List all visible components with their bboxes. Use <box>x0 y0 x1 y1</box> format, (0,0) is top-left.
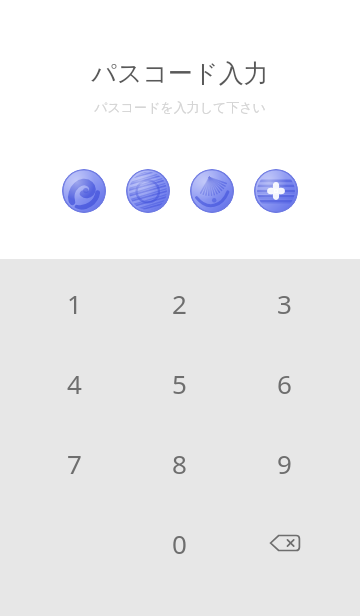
button[interactable]: Passcode digit 4 <box>254 169 298 213</box>
button[interactable]: Passcode digit 1 <box>62 169 106 213</box>
staticText: 2 <box>172 286 187 321</box>
button[interactable]: 6 <box>232 343 337 423</box>
staticText: パスコードを入力して下さい <box>94 99 266 115</box>
button[interactable]: 0 <box>127 503 232 583</box>
button[interactable]: 1 <box>22 263 127 343</box>
staticText: 5 <box>172 366 187 401</box>
button[interactable]: 9 <box>232 423 337 503</box>
staticText: 4 <box>67 366 82 401</box>
button[interactable]: Passcode digit 3 <box>190 169 234 213</box>
staticText: 1 <box>67 286 82 321</box>
button[interactable]: 5 <box>127 343 232 423</box>
button[interactable]: Passcode digit 2 <box>126 169 170 213</box>
button[interactable]: 3 <box>232 263 337 343</box>
staticText: パスコード入力 <box>91 58 269 89</box>
staticText: 3 <box>277 286 292 321</box>
button[interactable]: Backspace <box>232 503 337 583</box>
staticText: 9 <box>277 446 292 481</box>
staticText: 6 <box>277 366 292 401</box>
staticText: 7 <box>67 446 82 481</box>
staticText: 8 <box>172 446 187 481</box>
button[interactable]: 4 <box>22 343 127 423</box>
staticText: 0 <box>172 526 187 561</box>
button[interactable]: 2 <box>127 263 232 343</box>
button[interactable]: 8 <box>127 423 232 503</box>
button[interactable]: 7 <box>22 423 127 503</box>
